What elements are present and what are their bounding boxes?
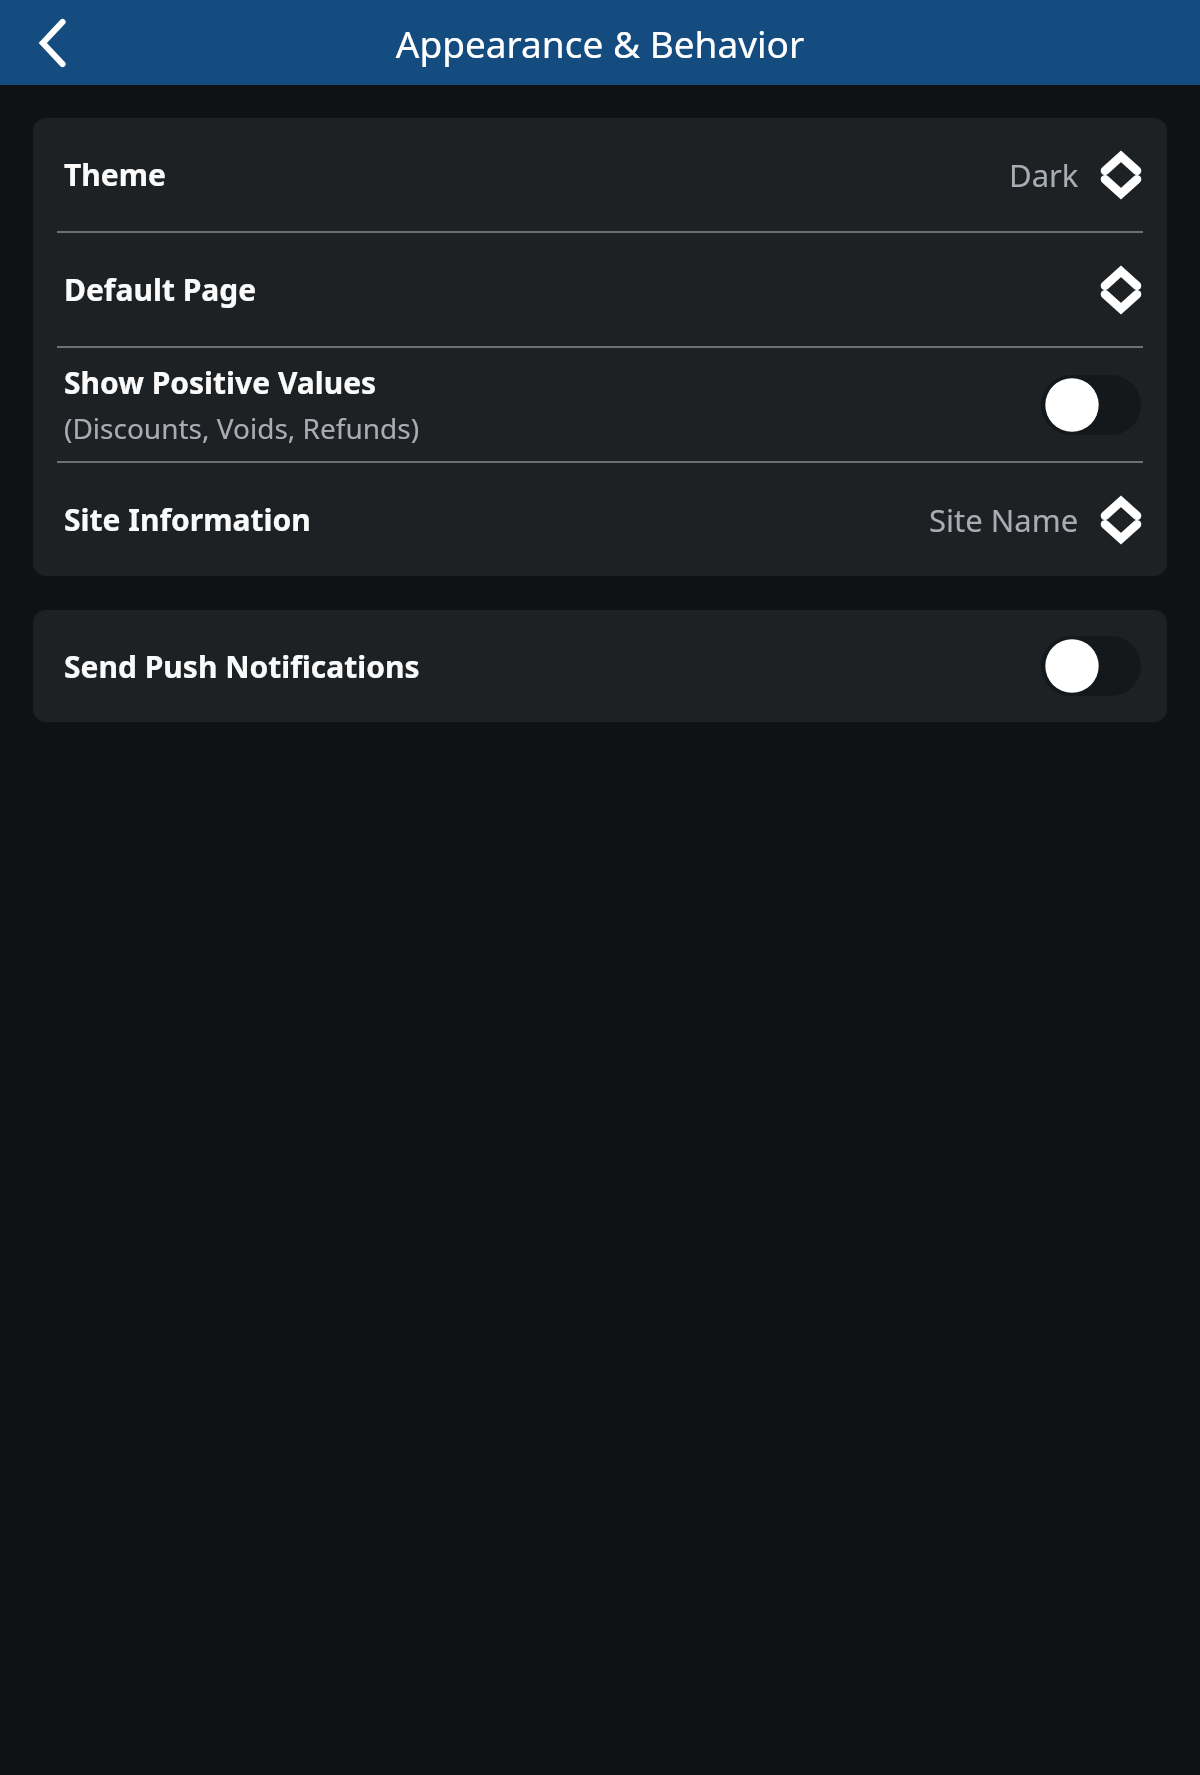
button[interactable]: Send Push Notifications <box>33 610 1167 722</box>
staticText: Send Push Notifications <box>64 646 420 687</box>
button[interactable]: Show Positive Values <box>33 348 1167 461</box>
button[interactable]: Theme <box>33 118 1167 231</box>
staticText: (Discounts, Voids, Refunds) <box>64 409 420 447</box>
button[interactable]: Site Information <box>33 463 1167 576</box>
staticText: Site Information <box>64 499 311 540</box>
staticText: Show Positive Values <box>64 362 377 403</box>
button[interactable]: Back <box>22 12 84 74</box>
button[interactable]: Toggle <box>1041 375 1141 435</box>
button[interactable]: Toggle <box>1041 636 1141 696</box>
staticText: Site Name <box>929 499 1079 541</box>
button[interactable]: Default Page <box>33 233 1167 346</box>
staticText: Dark <box>1009 154 1079 196</box>
staticText: Theme <box>64 154 166 195</box>
staticText: Appearance & Behavior <box>0 18 1200 68</box>
staticText: Default Page <box>64 269 257 310</box>
